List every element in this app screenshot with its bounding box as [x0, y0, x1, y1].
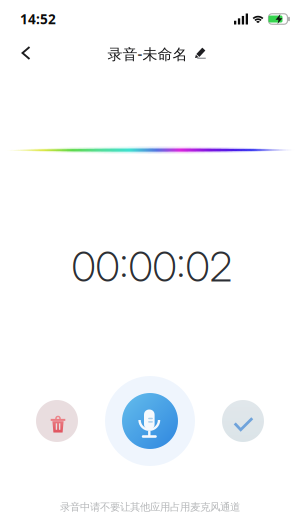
- button[interactable]: Record: [105, 376, 195, 466]
- staticText: 14:52: [20, 10, 56, 28]
- staticText: 录音-未命名: [107, 44, 187, 64]
- button[interactable]: Save recording: [222, 400, 264, 442]
- staticText: 录音中请不要让其他应用占用麦克风通道: [60, 500, 240, 513]
- staticText: 00:00:02: [71, 241, 232, 291]
- button[interactable]: Back: [11, 37, 40, 69]
- button[interactable]: Rename recording: [107, 38, 206, 70]
- button[interactable]: Delete recording: [36, 400, 78, 442]
